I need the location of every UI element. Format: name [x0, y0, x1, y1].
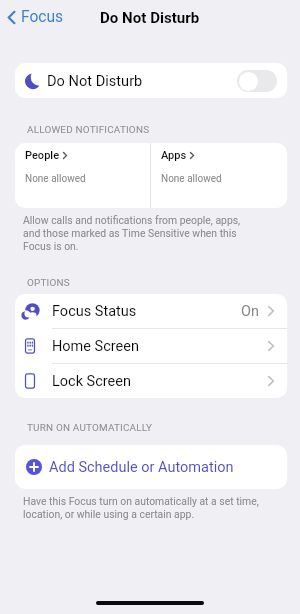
button[interactable]: People: [15, 143, 150, 208]
staticText: ALLOWED NOTIFICATIONS: [27, 124, 150, 136]
staticText: None allowed: [25, 173, 86, 185]
staticText: None allowed: [161, 173, 222, 185]
button[interactable]: Home Screen: [15, 329, 287, 363]
button[interactable]: Focus: [5, 3, 67, 31]
staticText: On: [241, 303, 259, 320]
button[interactable]: Lock Screen: [15, 364, 287, 398]
button[interactable]: Apps: [151, 143, 287, 208]
staticText: OPTIONS: [27, 277, 70, 289]
staticText: People: [25, 149, 60, 162]
button[interactable]: Add Schedule or Automation: [15, 445, 287, 489]
staticText: Have this Focus turn on automatically at…: [23, 495, 259, 520]
staticText: Apps: [161, 149, 187, 162]
button[interactable]: Do Not Disturb toggle: [237, 70, 277, 92]
staticText: Focus: [21, 8, 64, 26]
staticText: Do Not Disturb: [47, 72, 143, 89]
staticText: Focus Status: [52, 303, 137, 320]
staticText: TURN ON AUTOMATICALLY: [27, 422, 153, 434]
staticText: Do Not Disturb: [100, 9, 200, 27]
button[interactable]: Do Not Disturb: [15, 63, 287, 98]
staticText: Allow calls and notifications from peopl…: [23, 214, 241, 252]
button[interactable]: Focus Status: [15, 294, 287, 328]
staticText: Home Screen: [52, 338, 139, 355]
staticText: Add Schedule or Automation: [49, 459, 234, 476]
staticText: Lock Screen: [52, 373, 131, 390]
